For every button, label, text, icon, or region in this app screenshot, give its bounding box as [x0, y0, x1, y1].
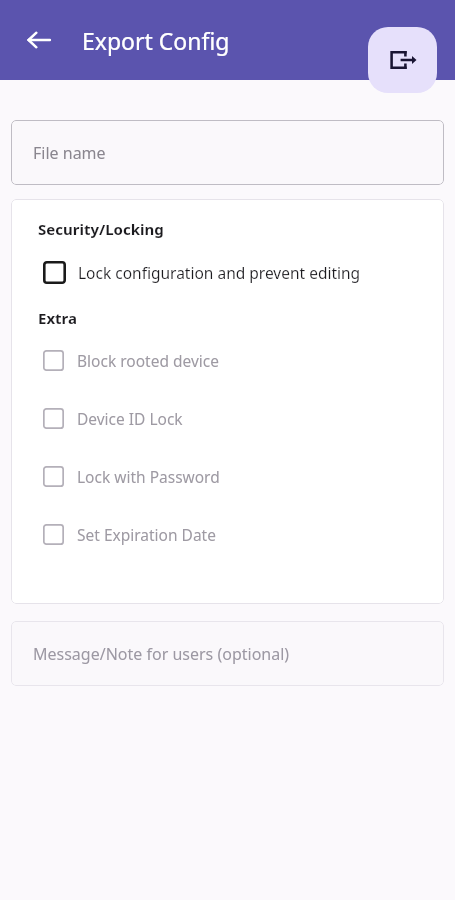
staticText: Set Expiration Date [77, 524, 216, 545]
button[interactable]: Set Expiration Date [11, 516, 444, 552]
staticText: Lock with Password [77, 466, 220, 487]
staticText: File name [33, 142, 106, 164]
staticText: Message/Note for users (optional) [33, 643, 290, 665]
staticText: Extra [38, 308, 77, 328]
button[interactable]: Export [368, 27, 437, 93]
button[interactable]: Lock configuration and prevent editing [11, 254, 444, 290]
staticText: Security/Locking [38, 219, 164, 239]
button[interactable]: Back [14, 15, 64, 65]
button[interactable]: Message/Note for users (optional) [11, 621, 444, 686]
staticText: Block rooted device [77, 350, 219, 371]
staticText: Lock configuration and prevent editing [78, 262, 361, 283]
staticText: Export Config [82, 25, 230, 56]
button[interactable]: Device ID Lock [11, 400, 444, 436]
button[interactable]: Block rooted device [11, 342, 444, 378]
staticText: Device ID Lock [77, 408, 183, 429]
button[interactable]: File name [11, 120, 444, 185]
button[interactable]: Lock with Password [11, 458, 444, 494]
